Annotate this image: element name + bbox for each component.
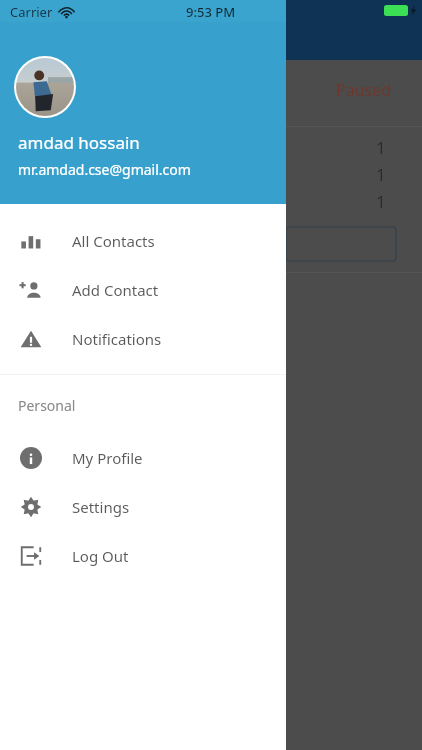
button[interactable]: Settings	[0, 482, 286, 531]
staticText: My Profile	[72, 448, 143, 468]
button[interactable]: All Contacts	[0, 216, 286, 265]
staticText: Log Out	[72, 546, 129, 566]
staticText: amdad hossain	[18, 131, 140, 154]
staticText: Carrier	[10, 3, 53, 21]
button[interactable]: Add Contact	[0, 265, 286, 314]
staticText: Add Contact	[72, 280, 159, 300]
button[interactable]: My Profile	[0, 433, 286, 482]
staticText: Paused	[336, 79, 392, 101]
staticText: Settings	[72, 497, 130, 517]
staticText: All Contacts	[72, 231, 155, 251]
staticText: 1	[376, 163, 386, 186]
staticText: 1	[376, 136, 386, 159]
staticText: Personal	[18, 396, 76, 415]
button[interactable]: Log Out	[0, 531, 286, 580]
staticText: Notifications	[72, 329, 162, 349]
staticText: 1	[376, 190, 386, 213]
button[interactable]: Notifications	[0, 314, 286, 363]
staticText: mr.amdad.cse@gmail.com	[18, 160, 191, 179]
staticText: 9:53 PM	[186, 3, 236, 21]
